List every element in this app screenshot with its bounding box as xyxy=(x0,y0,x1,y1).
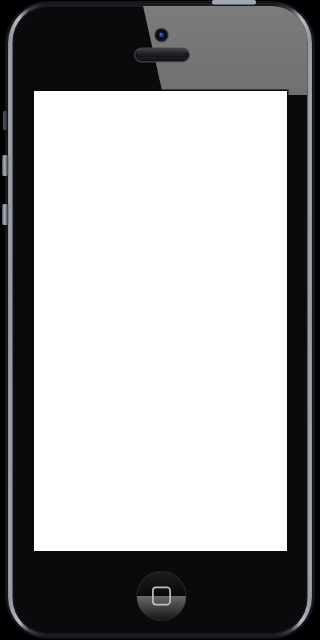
other: Smartphone device mockup xyxy=(0,0,320,640)
button[interactable] xyxy=(0,0,320,640)
